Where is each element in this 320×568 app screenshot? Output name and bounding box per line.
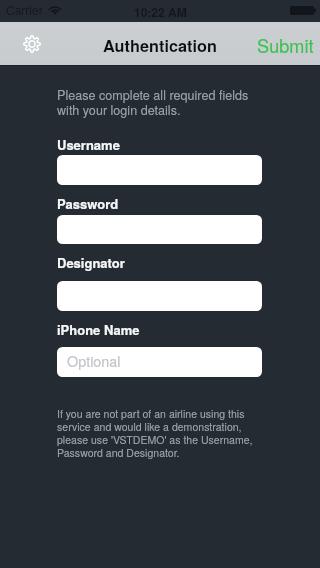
staticText: 10:22 AM — [134, 3, 187, 20]
button[interactable]: Optional — [57, 347, 262, 377]
staticText: If you are not part of an airline using … — [57, 408, 262, 460]
staticText: Optional — [67, 350, 121, 371]
staticText: Please complete all required fields with… — [57, 88, 253, 118]
staticText: Username — [57, 135, 120, 154]
button[interactable] — [57, 215, 262, 244]
button[interactable]: Settings — [17, 29, 46, 58]
staticText: iPhone Name — [57, 320, 140, 339]
button[interactable] — [57, 155, 262, 185]
button[interactable]: Submit — [247, 26, 320, 64]
staticText: Password — [57, 194, 119, 213]
button[interactable] — [57, 281, 262, 311]
staticText: Carrier — [6, 1, 43, 18]
staticText: Designator — [57, 253, 125, 272]
staticText: Authentication — [103, 34, 217, 57]
staticText: Submit — [257, 32, 314, 58]
